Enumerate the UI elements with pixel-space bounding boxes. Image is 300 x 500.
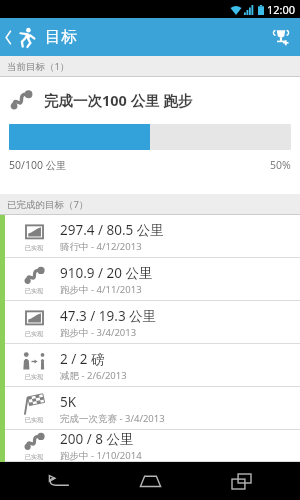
staticText: 200 / 8 公里 — [60, 430, 134, 448]
staticText: 已实现 — [25, 244, 43, 252]
staticText: 已完成的目标（7） — [7, 198, 89, 211]
staticText: 目标 — [45, 27, 77, 47]
staticText: 当前目标（1） — [7, 60, 70, 73]
staticText: 已实现 — [25, 453, 43, 461]
staticText: 5K — [60, 393, 77, 411]
staticText: 已实现 — [25, 287, 43, 295]
staticText: 已实现 — [25, 330, 43, 338]
staticText: 完成一次竞赛 - 3/4/2013 — [60, 412, 165, 425]
staticText: 减肥 - 2/6/2013 — [60, 369, 127, 382]
staticText: 已实现 — [25, 416, 43, 424]
button[interactable]: 已实现 — [0, 215, 300, 258]
button[interactable]: Back — [27, 462, 91, 500]
button[interactable]: 已实现 — [0, 344, 300, 387]
staticText: 已实现 — [25, 373, 43, 381]
staticText: 完成一次100 公里 跑步 — [44, 90, 193, 110]
staticText: 骑行中 - 4/12/2013 — [60, 240, 142, 253]
button[interactable]: Add goal — [262, 18, 300, 56]
button[interactable]: Recent apps — [209, 462, 273, 500]
staticText: 910.9 / 20 公里 — [60, 264, 153, 282]
button[interactable]: 已实现 — [0, 387, 300, 430]
staticText: 跑步中 - 4/11/2013 — [60, 283, 142, 296]
button[interactable]: 已实现 — [0, 430, 300, 462]
staticText: 跑步中 - 1/10/2014 — [60, 449, 142, 462]
staticText: 2 / 2 磅 — [60, 350, 105, 368]
button[interactable]: Home — [118, 462, 182, 500]
staticText: 50/100 公里 — [9, 158, 67, 172]
staticText: 297.4 / 80.5 公里 — [60, 221, 164, 239]
button[interactable]: 已实现 — [0, 301, 300, 344]
staticText: 12:00 — [267, 2, 296, 17]
staticText: 50% — [270, 158, 291, 172]
staticText: 47.3 / 19.3 公里 — [60, 307, 157, 325]
button[interactable]: 目标 — [0, 18, 85, 56]
staticText: 跑步中 - 3/4/2013 — [60, 326, 137, 339]
button[interactable]: 完成一次100 公里 跑步 — [0, 77, 300, 194]
button[interactable]: 已实现 — [0, 258, 300, 301]
